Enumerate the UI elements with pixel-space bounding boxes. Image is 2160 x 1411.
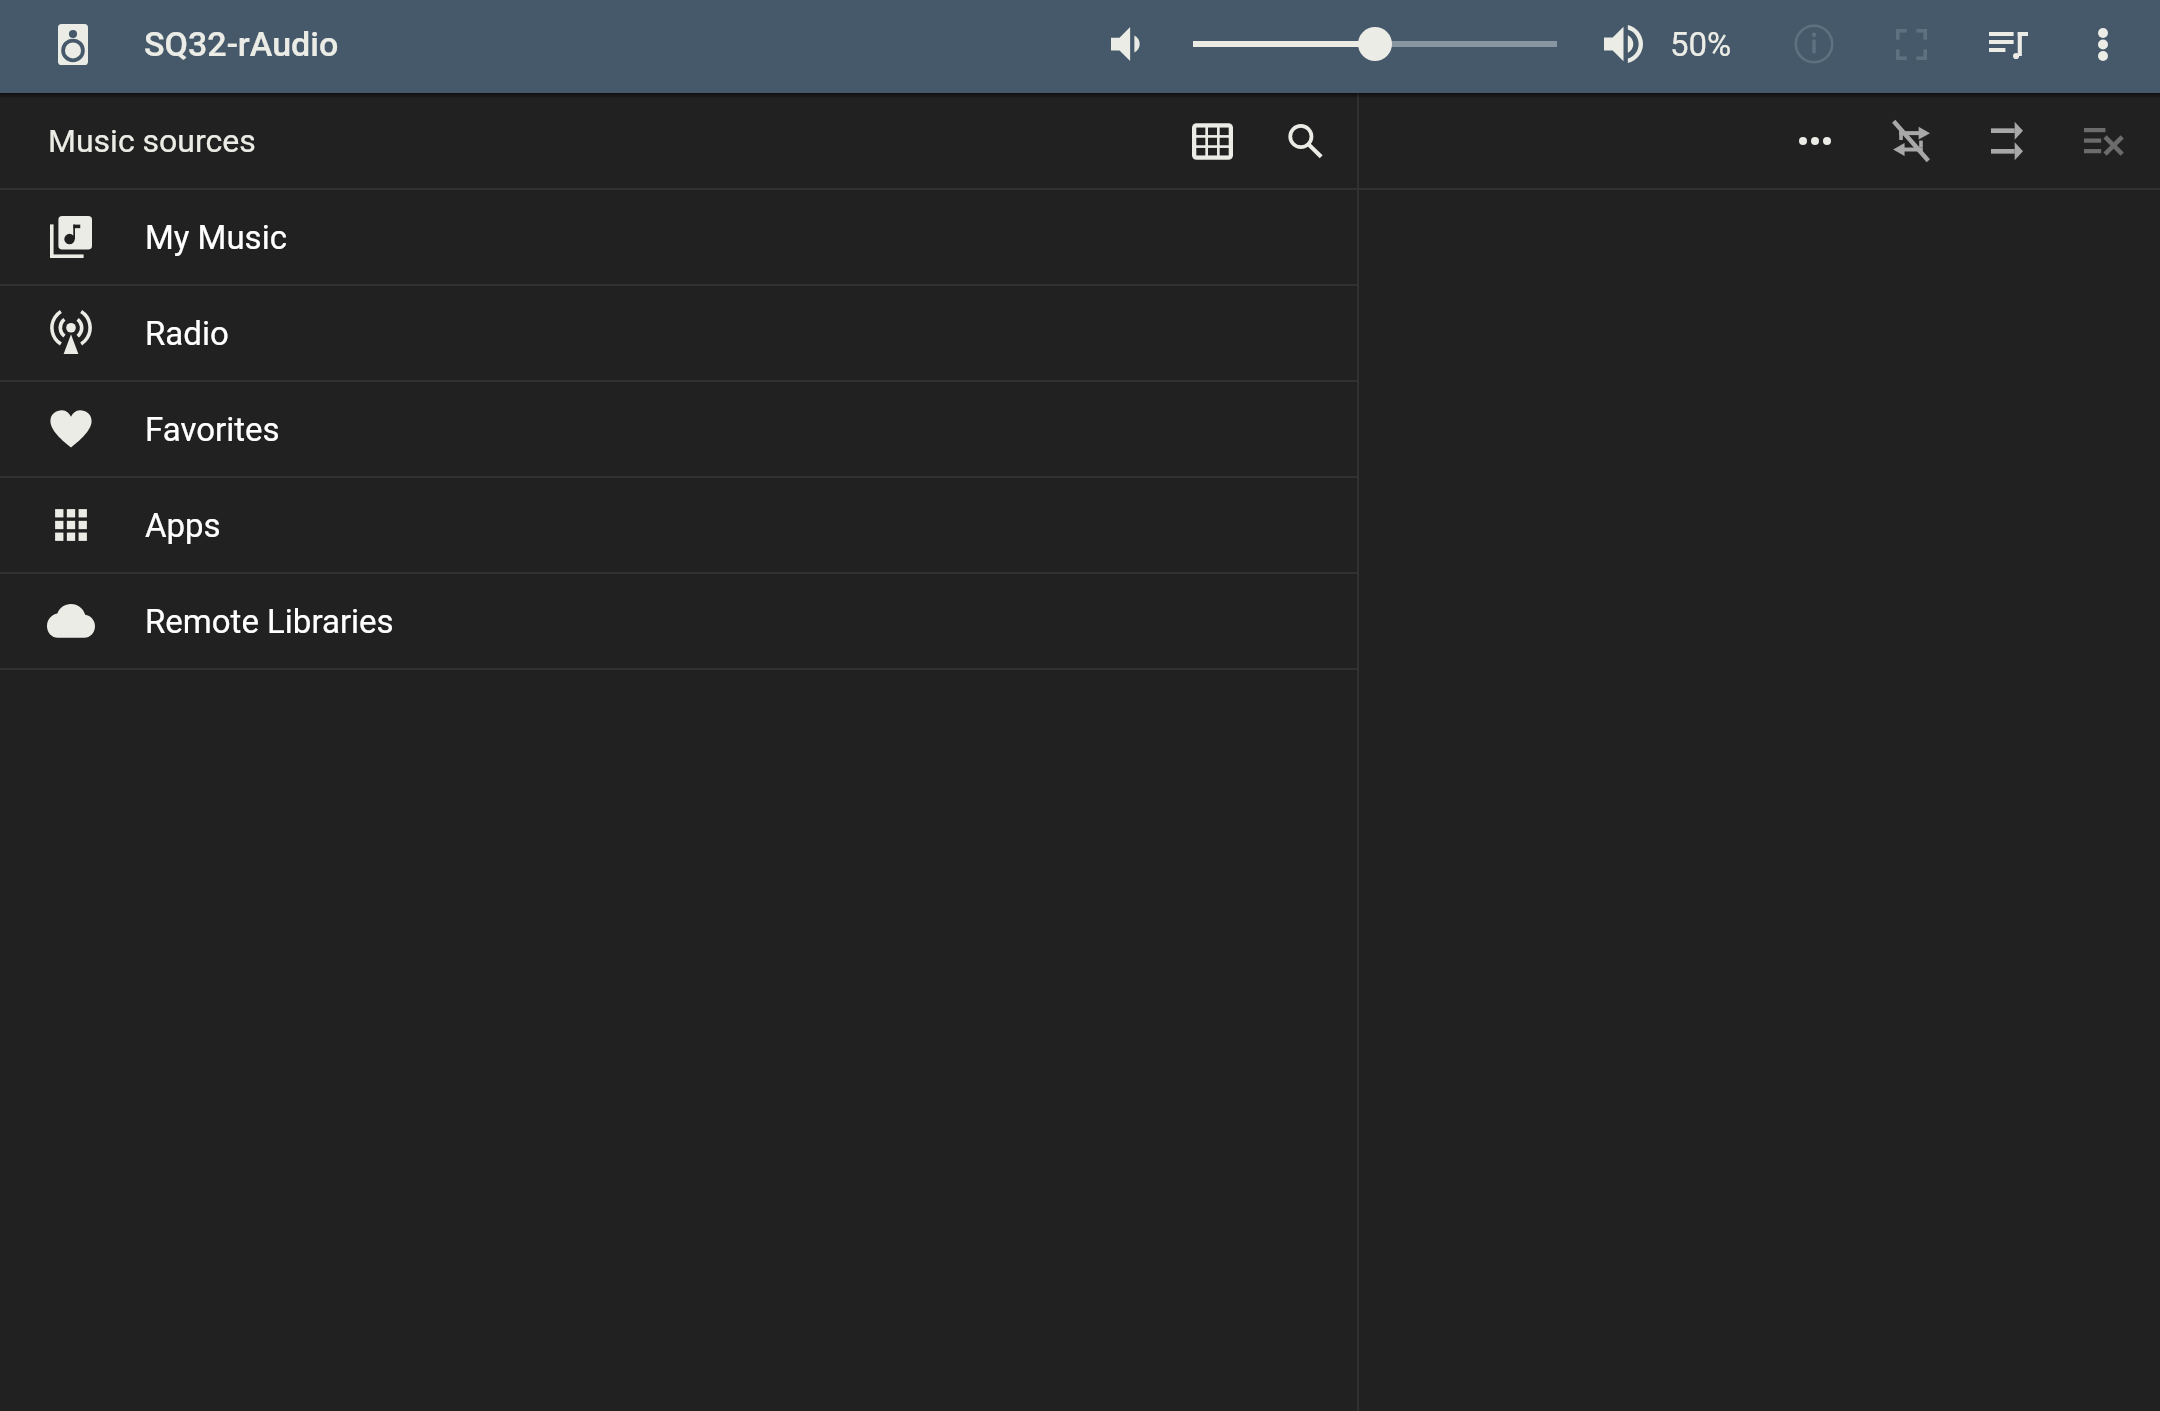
staticText: Radio	[145, 314, 229, 353]
button[interactable]: Volume up	[1592, 13, 1654, 75]
button[interactable]: Search	[1273, 109, 1337, 173]
button[interactable]: More options	[2072, 13, 2134, 75]
staticText: SQ32-rAudio	[144, 24, 339, 64]
staticText: Favorites	[145, 410, 280, 449]
button[interactable]: Fullscreen	[1880, 13, 1942, 75]
button[interactable]: Volume down	[1097, 13, 1159, 75]
button[interactable]: Volume slider	[1193, 13, 1557, 75]
button[interactable]: Grid view	[1180, 109, 1244, 173]
button[interactable]: My Music	[0, 190, 1357, 284]
button[interactable]: Speaker	[50, 21, 96, 67]
staticText: Music sources	[48, 122, 256, 160]
button[interactable]: Remote Libraries	[0, 574, 1357, 668]
button[interactable]: Repeat off	[1975, 109, 2039, 173]
button[interactable]: Apps	[0, 478, 1357, 572]
button[interactable]: Info	[1783, 13, 1845, 75]
button[interactable]: More	[1783, 109, 1847, 173]
staticText: My Music	[145, 218, 287, 257]
button[interactable]: Queue	[1977, 13, 2039, 75]
staticText: 50%	[1670, 25, 1732, 64]
button[interactable]: Clear queue	[2071, 109, 2135, 173]
button[interactable]: Radio	[0, 286, 1357, 380]
button[interactable]: Shuffle off	[1879, 109, 1943, 173]
staticText: Apps	[145, 506, 221, 545]
button[interactable]: Favorites	[0, 382, 1357, 476]
staticText: Remote Libraries	[145, 602, 394, 641]
